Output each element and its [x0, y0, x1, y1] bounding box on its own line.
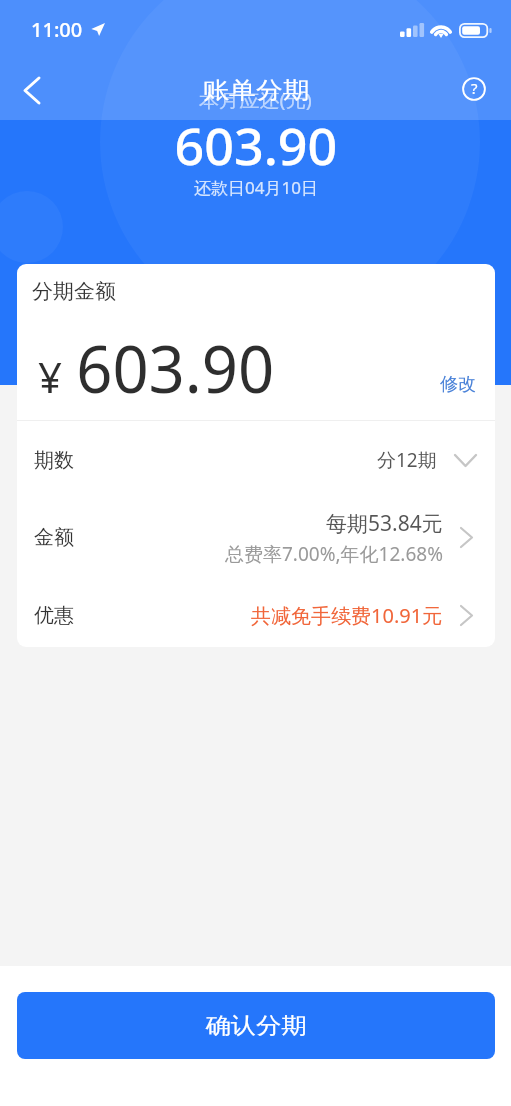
button[interactable]: 期数	[17, 421, 495, 499]
staticText: 分12期	[377, 447, 437, 473]
staticText: 分期金额	[32, 279, 116, 304]
staticText: 11:00	[31, 16, 83, 43]
staticText: 确认分期	[205, 1012, 307, 1040]
button[interactable]: Back	[6, 64, 58, 116]
staticText: 修改	[440, 373, 476, 396]
staticText: ¥	[38, 348, 63, 405]
button[interactable]: 金额	[17, 499, 495, 576]
staticText: 本月应还(元)	[199, 88, 312, 113]
staticText: 总费率7.00%,年化12.68%	[225, 541, 443, 567]
staticText: 603.90	[76, 322, 275, 412]
staticText: ?	[471, 78, 478, 98]
staticText: 优惠	[34, 603, 74, 628]
staticText: 金额	[34, 525, 74, 550]
staticText: 共减免手续费10.91元	[251, 602, 443, 629]
button[interactable]: 确认分期	[17, 992, 495, 1059]
button[interactable]: 优惠	[17, 576, 495, 646]
button[interactable]: Help	[448, 63, 500, 115]
staticText: 期数	[34, 448, 74, 473]
button[interactable]: 修改	[440, 373, 476, 396]
staticText: 账单分期	[203, 76, 309, 105]
staticText: 每期53.84元	[326, 509, 443, 538]
staticText: 603.90	[174, 110, 338, 179]
staticText: 还款日04月10日	[194, 176, 318, 199]
